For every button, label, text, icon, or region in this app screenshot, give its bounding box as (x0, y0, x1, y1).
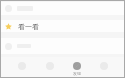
button[interactable]: Me (90, 57, 117, 78)
staticText: 看一看 (18, 22, 39, 31)
button[interactable] (0, 38, 125, 54)
button[interactable]: Chats (8, 57, 36, 78)
staticText: 发现 (73, 71, 81, 76)
button[interactable]: Contacts (36, 57, 63, 78)
button[interactable]: 看一看 (0, 20, 125, 32)
button[interactable]: Discover (63, 57, 90, 78)
button[interactable] (0, 2, 125, 15)
